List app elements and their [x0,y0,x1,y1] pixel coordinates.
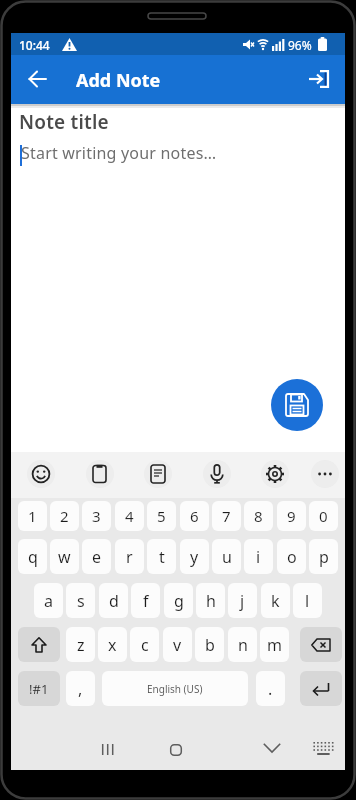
staticText: 2 [60,506,69,526]
button[interactable]: 8 [244,501,273,531]
button[interactable]: j [228,583,257,618]
button[interactable]: 1 [18,501,47,531]
button[interactable]: 5 [147,501,176,531]
button[interactable]: l [293,583,322,618]
button[interactable]: , [66,671,95,706]
button[interactable] [27,460,55,488]
button[interactable] [18,627,60,662]
staticText: n [238,634,248,656]
staticText: r [126,546,133,568]
button[interactable]: 2 [50,501,79,531]
staticText: k [271,590,280,612]
button[interactable]: d [99,583,128,618]
staticText: !#1 [29,680,49,698]
button[interactable]: s [66,583,95,618]
button[interactable]: i [244,539,273,574]
button[interactable] [257,735,282,760]
staticText: 3 [92,506,101,526]
button[interactable]: 4 [115,501,144,531]
button[interactable]: w [50,539,79,574]
button[interactable]: e [82,539,111,574]
staticText: m [267,634,282,656]
staticText: Start writing your notes… [21,142,217,164]
button[interactable]: . [256,671,285,706]
button[interactable]: k [261,583,290,618]
staticText: y [190,546,199,568]
button[interactable] [300,627,342,662]
staticText: h [206,590,216,612]
staticText: e [92,546,102,568]
staticText: t [159,546,165,568]
button[interactable] [271,379,323,431]
button[interactable]: u [212,539,241,574]
button[interactable]: q [18,539,47,574]
button[interactable]: c [130,627,159,662]
button[interactable]: !#1 [18,671,60,706]
button[interactable]: z [66,627,95,662]
button[interactable] [300,671,342,706]
button[interactable]: h [196,583,225,618]
staticText: v [173,634,182,656]
button[interactable]: 3 [82,501,111,531]
staticText: o [287,546,297,568]
button[interactable]: t [147,539,176,574]
staticText: z [77,634,85,656]
button[interactable] [86,460,114,488]
button[interactable]: o [277,539,306,574]
staticText: . [268,678,273,700]
staticText: w [58,546,71,568]
button[interactable]: x [98,627,127,662]
button[interactable] [203,460,231,488]
staticText: 8 [254,506,263,526]
staticText: 1 [28,506,37,526]
button[interactable]: r [115,539,144,574]
button[interactable] [311,460,339,488]
staticText: 6 [190,506,199,526]
staticText: u [222,546,232,568]
staticText: a [44,590,53,612]
button[interactable]: f [131,583,160,618]
staticText: l [305,590,310,612]
staticText: 9 [287,506,296,526]
staticText: q [28,546,38,568]
staticText: p [319,546,329,568]
staticText: s [77,590,85,612]
button[interactable]: m [260,627,289,662]
button[interactable] [305,65,335,93]
button[interactable]: 9 [277,501,306,531]
staticText: c [141,634,149,656]
staticText: Add Note [76,68,161,93]
staticText: 0 [319,506,328,526]
staticText: f [143,590,149,612]
staticText: , [78,678,83,700]
staticText: d [109,590,119,612]
staticText: English (US) [147,682,203,696]
staticText: 96% [288,37,312,53]
button[interactable] [144,460,172,488]
button[interactable]: n [228,627,257,662]
button[interactable]: 6 [180,501,209,531]
button[interactable]: 0 [309,501,338,531]
button[interactable]: 7 [212,501,241,531]
staticText: b [205,634,215,656]
button[interactable] [261,460,289,488]
button[interactable]: p [309,539,338,574]
staticText: 10:44 [19,37,50,53]
staticText: g [174,590,184,612]
staticText: 4 [125,506,134,526]
button[interactable]: v [163,627,192,662]
button[interactable]: b [195,627,224,662]
staticText: i [256,546,261,568]
button[interactable] [164,737,189,762]
button[interactable]: y [180,539,209,574]
staticText: Note title [19,109,109,135]
staticText: j [240,590,245,612]
button[interactable]: English (US) [102,671,248,706]
button[interactable] [310,737,336,762]
button[interactable] [24,65,52,93]
staticText: 5 [157,506,166,526]
staticText: 7 [222,506,231,526]
button[interactable] [95,737,120,762]
button[interactable]: a [34,583,63,618]
button[interactable]: g [164,583,193,618]
